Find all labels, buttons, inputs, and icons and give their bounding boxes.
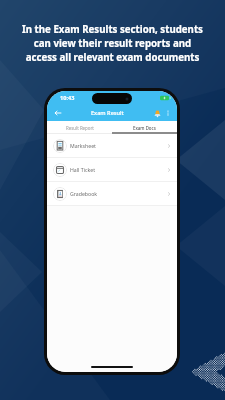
staticText: Exam Docs — [133, 125, 156, 131]
staticText: 10:43 — [60, 94, 75, 102]
button[interactable]: Hall Ticket — [47, 158, 177, 181]
staticText: Exam Result — [91, 109, 124, 117]
staticText: In the Exam Results section, students ca… — [6, 23, 219, 64]
button[interactable]: Back — [51, 106, 64, 119]
button[interactable]: More options — [163, 108, 173, 118]
button[interactable]: Notifications — [151, 107, 163, 119]
button[interactable]: Marksheet — [47, 134, 177, 157]
staticText: Marksheet — [70, 142, 96, 149]
button[interactable]: Gradebook — [47, 182, 177, 205]
staticText: Gradebook — [70, 190, 98, 197]
button[interactable]: Result Report — [47, 121, 112, 134]
button[interactable]: Exam Docs — [112, 121, 177, 134]
staticText: Result Report — [66, 125, 94, 131]
staticText: Hall Ticket — [70, 166, 96, 173]
